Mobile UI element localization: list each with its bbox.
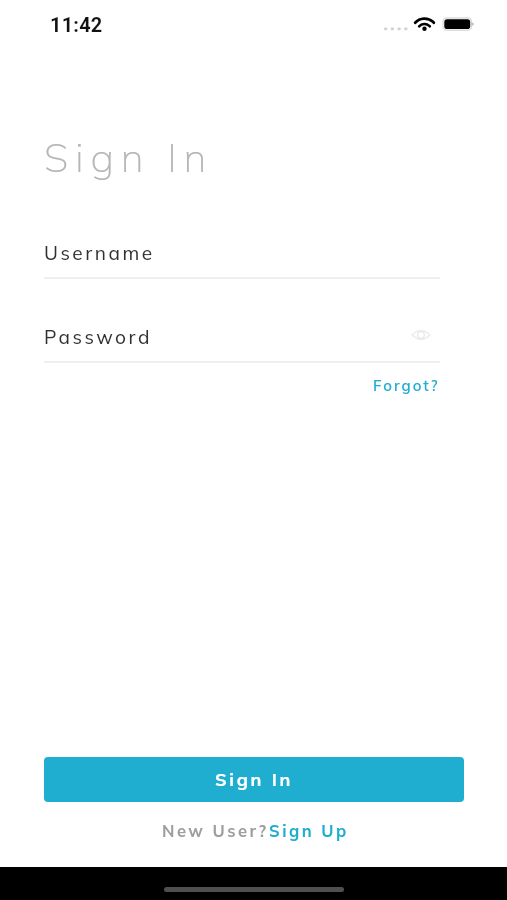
staticText: Forgot?: [373, 376, 440, 395]
button[interactable]: Sign In: [44, 757, 464, 802]
staticText: Sign In: [44, 132, 213, 182]
staticText: Username: [44, 241, 155, 265]
button[interactable]: Show password: [406, 320, 436, 350]
button[interactable]: Sign Up: [269, 820, 349, 841]
button[interactable]: Username: [44, 241, 440, 279]
staticText: New User?: [162, 820, 269, 841]
staticText: Sign In: [215, 768, 294, 791]
staticText: Password: [44, 325, 152, 349]
staticText: Sign Up: [269, 820, 349, 841]
staticText: 11:42: [50, 13, 103, 36]
button[interactable]: Password: [44, 325, 440, 363]
button[interactable]: Forgot?: [360, 374, 440, 396]
